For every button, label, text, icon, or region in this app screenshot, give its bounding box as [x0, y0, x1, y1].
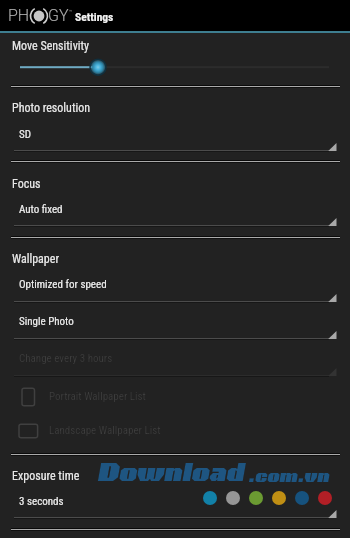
- staticText: Exposure time: [12, 469, 80, 483]
- staticText: Move Sensitivity: [12, 39, 90, 53]
- staticText: Optimized for speed: [19, 278, 107, 291]
- button[interactable]: Colour swatch 2: [226, 491, 240, 505]
- staticText: Auto fixed: [19, 203, 63, 216]
- staticText: Download: [97, 456, 244, 486]
- button[interactable]: Colour swatch 1: [203, 491, 217, 505]
- staticText: Settings: [75, 10, 114, 23]
- button[interactable]: Colour swatch 6: [318, 491, 332, 505]
- button[interactable]: 3 seconds: [0, 485, 350, 523]
- staticText: .com.vn: [248, 465, 329, 485]
- staticText: Wallpaper: [12, 252, 60, 266]
- button[interactable]: Colour swatch 3: [249, 491, 263, 505]
- button[interactable]: Colour swatch 4: [272, 491, 286, 505]
- staticText: Photo resolution: [12, 101, 91, 115]
- staticText: ™: [69, 8, 73, 15]
- button[interactable]: Landscape Wallpaper List: [0, 414, 350, 448]
- staticText: Portrait Wallpaper List: [49, 390, 146, 403]
- staticText: Landscape Wallpaper List: [49, 424, 161, 437]
- button[interactable]: Auto fixed: [0, 193, 350, 230]
- button[interactable]: Optimized for speed: [0, 268, 350, 306]
- button[interactable]: Portrait Wallpaper List: [0, 380, 350, 414]
- staticText: Change every 3 hours: [19, 352, 113, 365]
- staticText: Focus: [12, 177, 41, 191]
- staticText: SD: [19, 128, 31, 141]
- staticText: Single Photo: [19, 315, 74, 328]
- button[interactable]: Move sensitivity slider: [0, 56, 350, 78]
- button[interactable]: Colour swatch 5: [295, 491, 309, 505]
- staticText: GY: [48, 6, 69, 25]
- button[interactable]: Change every 3 hours: [0, 342, 350, 380]
- button[interactable]: Single Photo: [0, 305, 350, 343]
- button[interactable]: SD: [0, 118, 350, 155]
- staticText: 3 seconds: [19, 495, 64, 508]
- staticText: PH: [8, 6, 30, 25]
